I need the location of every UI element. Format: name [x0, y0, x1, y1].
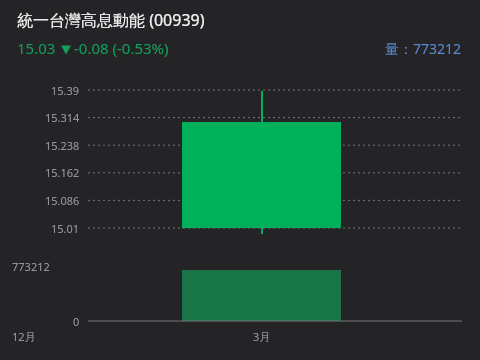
button[interactable]: 統一台灣高息動能 00939 stock chart [0, 0, 480, 360]
